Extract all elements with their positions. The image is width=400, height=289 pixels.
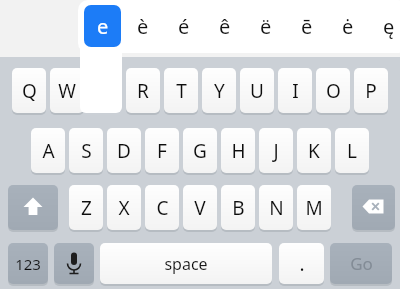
staticText: P: [365, 78, 377, 104]
button[interactable]: R: [126, 68, 160, 115]
staticText: Y: [214, 78, 225, 104]
staticText: J: [273, 138, 279, 164]
staticText: ê: [219, 13, 231, 40]
button[interactable]: O: [316, 68, 350, 115]
staticText: G: [193, 138, 207, 164]
button[interactable]: L: [335, 128, 369, 175]
staticText: ė: [342, 13, 354, 40]
staticText: U: [250, 78, 264, 104]
staticText: .: [299, 251, 305, 277]
button[interactable]: ę: [370, 5, 400, 47]
button[interactable]: Go: [330, 243, 392, 286]
staticText: A: [42, 138, 55, 164]
staticText: Z: [81, 195, 92, 221]
button[interactable]: .: [279, 243, 324, 286]
button[interactable]: ē: [288, 5, 325, 47]
button[interactable]: Q: [12, 68, 46, 115]
button[interactable]: D: [107, 128, 141, 175]
button[interactable]: è: [124, 5, 161, 47]
button[interactable]: e: [84, 5, 121, 47]
button[interactable]: C: [145, 185, 179, 232]
staticText: e: [97, 13, 109, 40]
staticText: F: [157, 138, 167, 164]
button[interactable]: X: [107, 185, 141, 232]
staticText: Q: [22, 78, 37, 104]
staticText: T: [176, 78, 187, 104]
button[interactable]: Dictate: [54, 243, 94, 286]
staticText: B: [232, 195, 245, 221]
staticText: I: [292, 78, 299, 104]
staticText: O: [326, 78, 341, 104]
staticText: è: [137, 13, 149, 40]
button[interactable]: H: [221, 128, 255, 175]
button[interactable]: U: [240, 68, 274, 115]
button[interactable]: Y: [202, 68, 236, 115]
staticText: ē: [301, 13, 313, 40]
button[interactable]: I: [278, 68, 312, 115]
button[interactable]: ë: [247, 5, 284, 47]
staticText: K: [308, 138, 320, 164]
button[interactable]: G: [183, 128, 217, 175]
staticText: é: [178, 13, 190, 40]
button[interactable]: Shift: [8, 185, 58, 232]
staticText: Go: [350, 252, 373, 275]
button[interactable]: T: [164, 68, 198, 115]
staticText: 123: [15, 254, 41, 274]
button[interactable]: P: [354, 68, 388, 115]
staticText: X: [118, 195, 130, 221]
button[interactable]: K: [297, 128, 331, 175]
button[interactable]: M: [297, 185, 331, 232]
button[interactable]: J: [259, 128, 293, 175]
staticText: ë: [260, 13, 272, 40]
staticText: S: [81, 138, 92, 164]
staticText: R: [137, 78, 149, 104]
button[interactable]: F: [145, 128, 179, 175]
staticText: ę: [383, 13, 395, 40]
button[interactable]: space: [100, 243, 272, 286]
button[interactable]: 123: [8, 243, 48, 286]
staticText: W: [58, 78, 76, 104]
staticText: M: [305, 195, 323, 221]
staticText: V: [194, 195, 206, 221]
button[interactable]: V: [183, 185, 217, 232]
button[interactable]: S: [69, 128, 103, 175]
button[interactable]: ė: [329, 5, 366, 47]
button[interactable]: Backspace: [352, 185, 395, 232]
button[interactable]: W: [50, 68, 84, 115]
button[interactable]: B: [221, 185, 255, 232]
button[interactable]: Z: [69, 185, 103, 232]
staticText: C: [156, 195, 169, 221]
staticText: N: [269, 195, 284, 221]
staticText: D: [117, 138, 131, 164]
staticText: H: [231, 138, 246, 164]
button[interactable]: N: [259, 185, 293, 232]
staticText: L: [347, 138, 357, 164]
button[interactable]: ê: [206, 5, 243, 47]
button[interactable]: A: [31, 128, 65, 175]
button[interactable]: é: [165, 5, 202, 47]
staticText: space: [164, 253, 208, 275]
